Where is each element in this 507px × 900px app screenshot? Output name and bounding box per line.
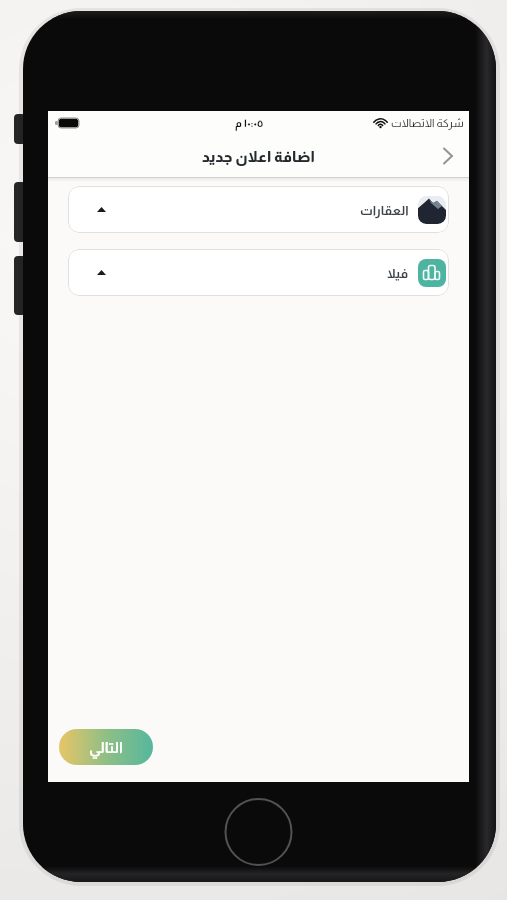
staticText: العقارات: [360, 203, 409, 218]
button[interactable]: [435, 145, 457, 167]
staticText: فيلا: [387, 266, 409, 281]
button[interactable]: العقارات: [68, 186, 449, 233]
staticText: التالي: [89, 739, 123, 756]
staticText: اضافة اعلان جديد: [202, 148, 315, 165]
button[interactable]: التالي: [59, 729, 153, 765]
button[interactable]: فيلا: [68, 249, 449, 296]
staticText: ١٠:٠٥ م: [235, 117, 264, 129]
staticText: شركة الاتصالات: [391, 117, 464, 129]
